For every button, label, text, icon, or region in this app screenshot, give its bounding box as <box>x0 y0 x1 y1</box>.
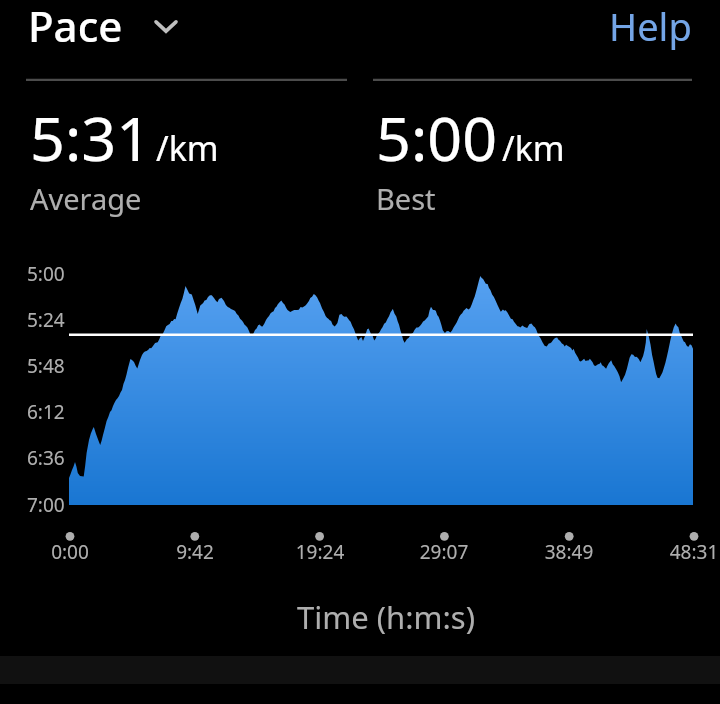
staticText: Time (h:m:s) <box>297 596 475 638</box>
staticText: 0:00 <box>30 539 110 565</box>
staticText: 19:24 <box>280 539 360 565</box>
staticText: Pace <box>28 0 123 54</box>
staticText: 5:24 <box>27 307 65 333</box>
staticText: 6:36 <box>27 445 65 471</box>
staticText: 6:12 <box>27 399 65 425</box>
staticText: 5:31 <box>30 96 152 179</box>
staticText: 5:00 <box>27 261 65 287</box>
staticText: Best <box>376 179 436 218</box>
staticText: Help <box>609 0 692 52</box>
staticText: Average <box>30 179 142 218</box>
staticText: 7:00 <box>27 492 65 518</box>
staticText: /km <box>156 125 219 171</box>
staticText: 38:49 <box>529 539 609 565</box>
staticText: 5:00 <box>376 96 498 179</box>
staticText: 29:07 <box>404 539 484 565</box>
staticText: 48:31 <box>654 539 720 565</box>
staticText: 9:42 <box>155 539 235 565</box>
button[interactable]: Pace, change metric <box>22 0 186 58</box>
staticText: /km <box>502 125 565 171</box>
staticText: 5:48 <box>27 353 65 379</box>
button[interactable]: Help <box>601 0 700 58</box>
